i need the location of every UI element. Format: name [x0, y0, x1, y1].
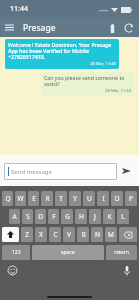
staticText: N	[95, 230, 100, 239]
staticText: T	[59, 194, 63, 203]
staticText: Can you please send someone to assist?	[44, 74, 131, 88]
button[interactable]: G	[61, 209, 73, 224]
button[interactable]: O	[111, 191, 123, 206]
button[interactable]: Open navigation menu	[0, 18, 19, 37]
button[interactable]: Shift	[2, 227, 19, 242]
button[interactable]: return	[106, 245, 137, 260]
staticText: M	[108, 230, 114, 239]
staticText: space	[61, 249, 75, 256]
button[interactable]: U	[83, 191, 95, 206]
button[interactable]: J	[89, 209, 101, 224]
button[interactable]: T	[55, 191, 67, 206]
button[interactable]: Delete	[119, 227, 137, 242]
staticText: 123	[12, 249, 21, 256]
button[interactable]: space	[32, 245, 104, 260]
button[interactable]: Voice input	[120, 264, 133, 277]
button[interactable]: W	[15, 191, 26, 206]
staticText: H	[79, 212, 84, 221]
staticText: P	[129, 194, 133, 203]
button[interactable]: Q	[2, 191, 13, 206]
button[interactable]: N	[91, 227, 103, 242]
button[interactable]: E	[28, 191, 39, 206]
button[interactable]: Emoji	[6, 264, 19, 277]
button[interactable]: Z	[21, 227, 33, 242]
button[interactable]: X	[35, 227, 47, 242]
staticText: Presage	[23, 22, 56, 34]
staticText: A	[12, 212, 17, 221]
staticText: Z	[25, 230, 29, 239]
staticText: K	[107, 212, 112, 221]
button[interactable]: Send message	[4, 163, 117, 180]
button[interactable]: R	[41, 191, 53, 206]
button[interactable]: L	[117, 209, 129, 224]
button[interactable]: Can you please send someone to assist?	[41, 72, 134, 96]
staticText: 11:44	[10, 4, 28, 14]
staticText: R	[45, 194, 50, 203]
button[interactable]: H	[75, 209, 87, 224]
button[interactable]: V	[63, 227, 75, 242]
staticText: G	[65, 212, 70, 221]
staticText: C	[53, 230, 58, 239]
button[interactable]: I	[97, 191, 109, 206]
staticText: W	[17, 194, 24, 203]
staticText: V	[67, 230, 71, 239]
staticText: L	[121, 212, 125, 221]
staticText: O	[114, 194, 120, 203]
button[interactable]: B	[77, 227, 89, 242]
staticText: B	[81, 230, 86, 239]
staticText: E	[32, 194, 36, 203]
staticText: S	[26, 212, 30, 221]
staticText: D	[38, 212, 43, 221]
button[interactable]: K	[103, 209, 115, 224]
button[interactable]: F	[48, 209, 59, 224]
button[interactable]: S	[22, 209, 33, 224]
staticText: I	[102, 194, 105, 203]
staticText: Q	[5, 194, 11, 203]
staticText: U	[87, 194, 92, 203]
staticText: return	[114, 249, 129, 256]
button[interactable]: Y	[69, 191, 81, 206]
button[interactable]: Send	[117, 162, 135, 180]
button[interactable]: Refresh	[121, 19, 136, 37]
button[interactable]: C	[49, 227, 61, 242]
staticText: Y	[73, 194, 77, 203]
staticText: 28 Mar, 11:43	[90, 61, 116, 67]
button[interactable]: P	[125, 191, 137, 206]
button[interactable]: M	[105, 227, 117, 242]
staticText: X	[39, 230, 43, 239]
staticText: F	[52, 212, 56, 221]
staticText: J	[94, 212, 96, 221]
button[interactable]: A	[9, 209, 20, 224]
staticText: Send message	[11, 168, 52, 176]
staticText: 28 Mar, 11:44	[105, 88, 131, 94]
button[interactable]: Welcome ! Estate Dominion, Your Presage …	[5, 39, 119, 69]
button[interactable]: 123	[2, 245, 30, 260]
button[interactable]: Battery status	[103, 19, 121, 37]
staticText: Welcome ! Estate Dominion, Your Presage …	[8, 41, 116, 61]
button[interactable]: D	[35, 209, 46, 224]
